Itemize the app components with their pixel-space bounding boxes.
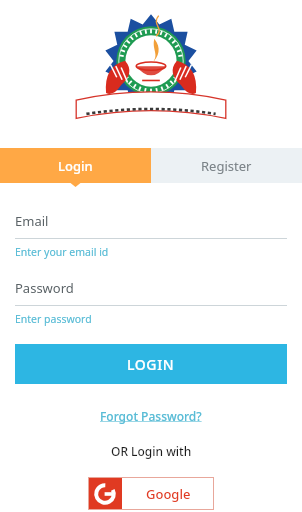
- button[interactable]: Forgot Password?: [94, 406, 208, 426]
- staticText: Enter your email id: [15, 245, 109, 259]
- staticText: LOGIN: [127, 355, 175, 374]
- staticText: Enter password: [15, 312, 92, 326]
- button[interactable]: Email: [0, 212, 302, 259]
- staticText: Forgot Password?: [100, 408, 202, 424]
- button[interactable]: Login: [0, 148, 151, 183]
- button[interactable]: Register: [151, 148, 302, 183]
- button[interactable]: Password: [0, 279, 302, 326]
- staticText: Register: [201, 157, 252, 175]
- staticText: Password: [15, 279, 74, 297]
- button[interactable]: LOGIN: [15, 344, 287, 384]
- staticText: Login: [58, 157, 93, 175]
- staticText: OR Login with: [111, 443, 192, 459]
- staticText: Google: [146, 485, 191, 503]
- button[interactable]: Google: [88, 477, 214, 510]
- staticText: Email: [15, 212, 49, 230]
